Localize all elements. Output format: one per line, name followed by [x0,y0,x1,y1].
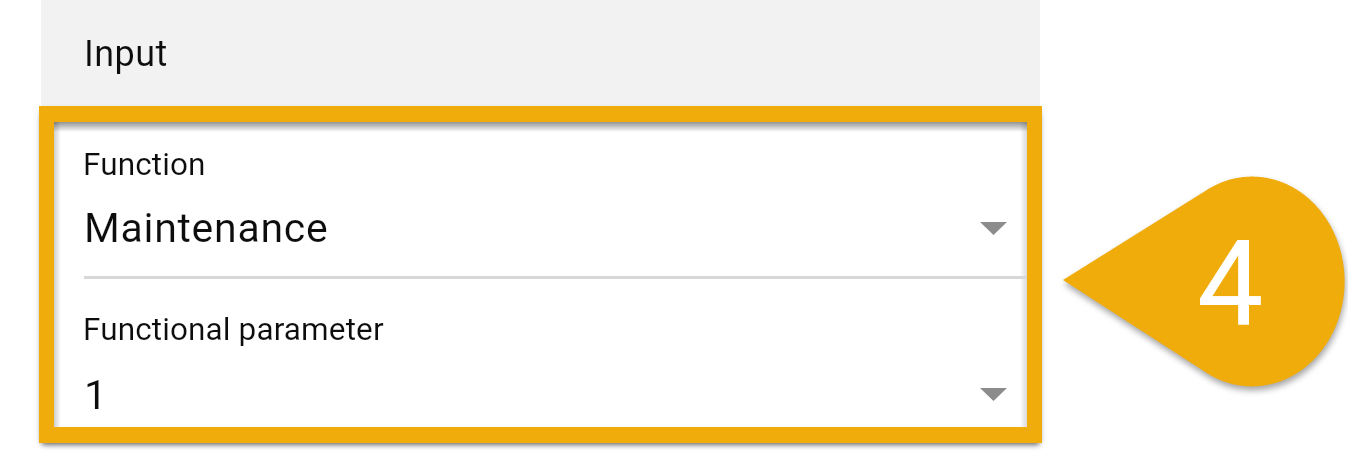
staticText: Functional parameter [83,311,384,348]
button[interactable] [41,0,1040,106]
other: Step 4 [0,0,1348,452]
staticText: 4 [1197,216,1264,354]
button[interactable] [55,122,1026,276]
staticText: Function [83,146,206,183]
staticText: Maintenance [84,204,329,252]
button[interactable] [55,279,1026,427]
staticText: 1 [84,371,108,419]
staticText: Input [84,33,168,75]
